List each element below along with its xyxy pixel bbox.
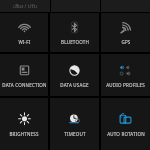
button[interactable]: Auto rotation (101, 98, 150, 150)
staticText: BRIGHTNESS (9, 131, 39, 137)
staticText: BLUETOOTH (61, 39, 89, 45)
staticText: AUDIO PROFILES (106, 82, 145, 88)
button[interactable]: Brightness (0, 98, 48, 150)
button[interactable]: GPS (101, 13, 150, 52)
button[interactable]: Wi-Fi (0, 13, 48, 52)
staticText: TIMEOUT (64, 131, 86, 137)
button[interactable]: Bluetooth (50, 13, 99, 52)
button[interactable]: Audio profiles (101, 54, 150, 96)
staticText: DATA USAGE (60, 82, 89, 88)
staticText: เสียง / ปรับ (13, 2, 37, 10)
button[interactable]: Data usage (50, 54, 99, 96)
staticText: WI-FI (18, 39, 31, 45)
staticText: AUTO ROTATION (107, 131, 145, 137)
button[interactable]: Data connection (0, 54, 48, 96)
button[interactable]: เสียง / ปรับ (0, 0, 50, 12)
staticText: GPS (121, 39, 131, 45)
staticText: DATA CONNECTION (2, 82, 47, 88)
button[interactable]: Screen timeout (50, 98, 99, 150)
